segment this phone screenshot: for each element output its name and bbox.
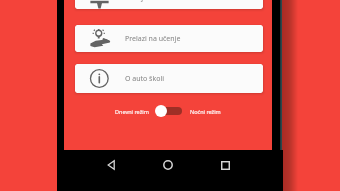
button[interactable]: Recent apps [214,154,236,176]
staticText: Noćni režim [190,108,221,115]
button[interactable]: Prelazi na učenje [75,25,263,52]
staticText: Dnevni režim [115,108,149,115]
staticText: Teorijska nastava [125,0,182,3]
button[interactable]: O auto školi [75,64,263,93]
button[interactable]: Back [101,154,123,176]
staticText: Prelazi na učenje [125,34,181,44]
button[interactable]: Teorijska nastava [75,0,263,9]
staticText: O auto školi [125,74,165,84]
button[interactable] [155,104,183,118]
button[interactable]: Home [157,154,179,176]
